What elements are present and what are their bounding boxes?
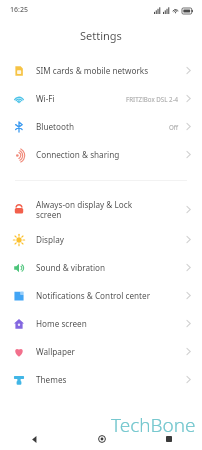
button[interactable]: Connection & sharing <box>0 141 202 168</box>
staticText: Connection & sharing <box>36 149 183 160</box>
staticText: Wallpaper <box>36 346 183 357</box>
staticText: 16:25 <box>10 5 28 15</box>
button[interactable]: Bluetooth <box>0 113 202 140</box>
button[interactable]: Display <box>0 226 202 253</box>
staticText: Wi-Fi <box>36 93 126 104</box>
staticText: SIM cards & mobile networks <box>36 65 183 76</box>
button[interactable]: Wi-Fi <box>0 85 202 112</box>
staticText: Themes <box>36 374 183 385</box>
staticText: TechBone <box>111 412 196 438</box>
staticText: Always-on display & Lock screen <box>36 199 183 220</box>
staticText: Display <box>36 234 183 245</box>
button[interactable]: Wallpaper <box>0 338 202 365</box>
staticText: Sound & vibration <box>36 262 183 273</box>
button[interactable]: Home <box>68 428 135 450</box>
button[interactable]: Sound & vibration <box>0 254 202 281</box>
button[interactable]: Recent apps <box>135 428 202 450</box>
button[interactable]: SIM cards & mobile networks <box>0 57 202 84</box>
staticText: Off <box>169 123 179 131</box>
button[interactable]: Notifications & Control center <box>0 282 202 309</box>
staticText: Settings <box>80 28 122 43</box>
button[interactable]: Back <box>0 428 68 450</box>
button[interactable]: Home screen <box>0 310 202 337</box>
staticText: Bluetooth <box>36 121 169 132</box>
button[interactable]: Always-on display & Lock screen <box>0 193 202 225</box>
staticText: FRITZ!Box DSL 2-4 <box>126 95 179 103</box>
staticText: Home screen <box>36 318 183 329</box>
staticText: Notifications & Control center <box>36 290 183 301</box>
button[interactable]: Themes <box>0 366 202 393</box>
